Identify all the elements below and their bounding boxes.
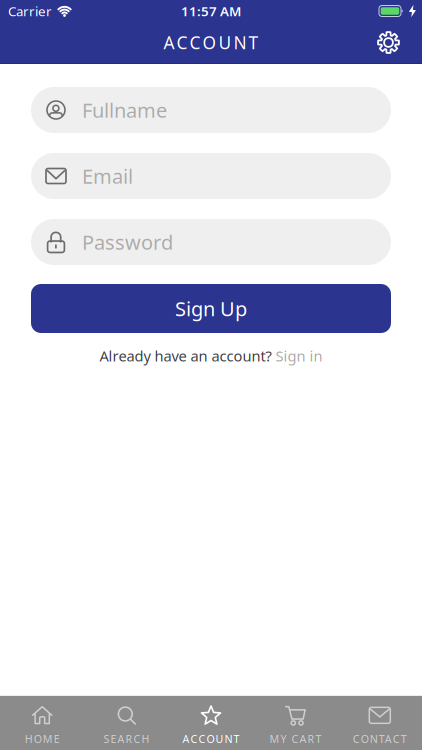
staticText: CONTACT	[353, 732, 407, 746]
button[interactable]: Fullname	[31, 87, 391, 133]
button[interactable]: HOME	[0, 705, 84, 746]
staticText: SEARCH	[104, 732, 150, 746]
button[interactable]: SEARCH	[84, 705, 169, 746]
staticText: Fullname	[82, 97, 167, 123]
button[interactable]: MY CART	[253, 705, 338, 746]
staticText: Sign in	[275, 346, 322, 365]
staticText: HOME	[25, 732, 60, 746]
button[interactable]: Sign in	[275, 346, 322, 365]
button[interactable]	[371, 25, 406, 60]
staticText: ACCOUNT	[182, 732, 239, 746]
staticText: 11:57 AM	[181, 2, 241, 20]
staticText: MY CART	[269, 732, 321, 746]
button[interactable]: CONTACT	[338, 705, 422, 746]
staticText: Already have an account?	[99, 346, 275, 365]
staticText: Carrier	[8, 2, 52, 20]
staticText: Password	[82, 229, 173, 255]
staticText: Sign Up	[175, 295, 247, 322]
staticText: Email	[82, 163, 133, 189]
button[interactable]: Email	[31, 153, 391, 199]
staticText: ACCOUNT	[163, 31, 258, 54]
button[interactable]: Password	[31, 219, 391, 265]
button[interactable]: Sign Up	[31, 284, 391, 333]
button[interactable]: ACCOUNT	[169, 705, 253, 746]
